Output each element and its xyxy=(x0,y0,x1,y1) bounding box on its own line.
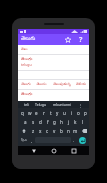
staticText: c xyxy=(46,128,49,134)
button[interactable]: ?౧౨ xyxy=(19,135,29,145)
button[interactable]: r xyxy=(40,108,47,117)
button[interactable]: తెలుసు xyxy=(36,82,47,87)
staticText: telugu xyxy=(21,62,32,67)
button[interactable]: Backspace xyxy=(79,126,89,135)
staticText: h xyxy=(60,119,63,125)
button[interactable]: More suggestions xyxy=(77,102,83,108)
button[interactable]: x xyxy=(37,126,44,135)
button[interactable]: తెలుపుతున్న xyxy=(53,82,71,87)
button[interactable]: , xyxy=(29,135,35,145)
staticText: f xyxy=(47,119,49,125)
staticText: q xyxy=(21,110,24,116)
staticText: i xyxy=(71,110,73,116)
button[interactable]: q xyxy=(18,108,26,117)
staticText: m xyxy=(73,128,78,134)
staticText: l xyxy=(82,119,84,125)
button[interactable]: i xyxy=(68,108,75,117)
button[interactable]: v xyxy=(51,126,58,135)
button[interactable]: l xyxy=(79,117,86,126)
button[interactable]: h xyxy=(58,117,65,126)
button[interactable]: n xyxy=(65,126,72,135)
staticText: ? xyxy=(79,35,83,45)
button[interactable]: Telugu xyxy=(35,102,47,107)
staticText: t xyxy=(50,110,52,116)
button[interactable]: Favourite xyxy=(63,35,73,45)
staticText: r xyxy=(43,110,45,116)
staticText: e xyxy=(35,110,38,116)
button[interactable]: తెలియ xyxy=(76,82,86,87)
button[interactable]: y xyxy=(54,108,61,117)
staticText: Telugu xyxy=(35,102,47,107)
button[interactable]: u xyxy=(61,108,68,117)
staticText: s xyxy=(32,119,35,125)
staticText: u xyxy=(63,110,66,116)
button[interactable]: . xyxy=(71,135,77,145)
button[interactable]: s xyxy=(29,117,37,126)
staticText: ⋮ xyxy=(78,103,82,108)
staticText: k xyxy=(74,119,77,125)
staticText: o xyxy=(77,110,80,116)
button[interactable]: b xyxy=(58,126,65,135)
staticText: b xyxy=(60,128,63,134)
button[interactable]: g xyxy=(51,117,58,126)
staticText: mkuntunni xyxy=(53,102,72,107)
button[interactable]: Enter xyxy=(77,135,88,145)
staticText: తెలు xyxy=(21,47,28,52)
staticText: d xyxy=(39,119,42,125)
button[interactable]: teli xyxy=(24,102,30,107)
button[interactable]: Help xyxy=(76,35,86,45)
button[interactable]: t xyxy=(47,108,54,117)
button[interactable]: o xyxy=(75,108,82,117)
staticText: n xyxy=(67,128,70,134)
staticText: ?౧౨ xyxy=(21,138,27,143)
staticText: g xyxy=(53,119,56,125)
button[interactable]: e xyxy=(33,108,40,117)
button[interactable]: Shift xyxy=(18,126,29,135)
staticText: తెలుగు xyxy=(21,82,31,87)
staticText: తెలుపుతున్న xyxy=(53,82,71,87)
staticText: z xyxy=(32,128,35,134)
staticText: . xyxy=(73,138,75,143)
staticText: p xyxy=(84,110,87,116)
staticText: j xyxy=(68,119,70,125)
button[interactable]: j xyxy=(65,117,72,126)
staticText: v xyxy=(53,128,56,134)
button[interactable]: z xyxy=(29,126,37,135)
button[interactable]: k xyxy=(72,117,79,126)
staticText: x xyxy=(39,128,42,134)
button[interactable]: f xyxy=(44,117,51,126)
button[interactable]: తెలుగు xyxy=(21,82,31,87)
button[interactable]: m xyxy=(72,126,79,135)
staticText: w xyxy=(28,110,32,116)
button[interactable]: Home xyxy=(49,146,58,155)
staticText: తెలుగు xyxy=(21,36,36,43)
button[interactable]: a xyxy=(21,117,29,126)
button[interactable]: w xyxy=(26,108,33,117)
staticText: teli xyxy=(24,102,30,107)
button[interactable]: Back xyxy=(29,146,38,155)
staticText: a xyxy=(24,119,27,125)
staticText: తెలుసు xyxy=(36,82,47,87)
button[interactable]: mkuntunni xyxy=(53,102,72,107)
staticText: తెలియ xyxy=(76,82,86,87)
button[interactable]: Recents xyxy=(69,146,78,155)
staticText: , xyxy=(31,138,33,143)
staticText: తెలుగు xyxy=(21,92,33,97)
button[interactable]: p xyxy=(82,108,89,117)
staticText: తెలుగు xyxy=(21,57,33,62)
button[interactable]: d xyxy=(37,117,44,126)
button[interactable]: c xyxy=(44,126,51,135)
staticText: y xyxy=(56,110,59,116)
